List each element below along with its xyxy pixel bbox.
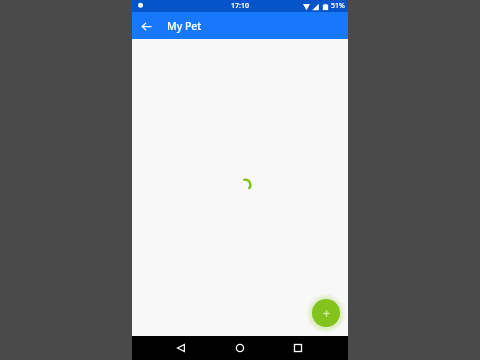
button[interactable]: Back <box>173 340 189 356</box>
button[interactable]: Add <box>312 299 340 327</box>
staticText: My Pet <box>167 19 202 33</box>
staticText: 17:10 <box>231 1 249 11</box>
button[interactable]: Recents <box>290 340 306 356</box>
button[interactable]: Home <box>232 340 248 356</box>
button[interactable]: Back <box>136 16 156 36</box>
staticText: 51% <box>331 1 345 11</box>
